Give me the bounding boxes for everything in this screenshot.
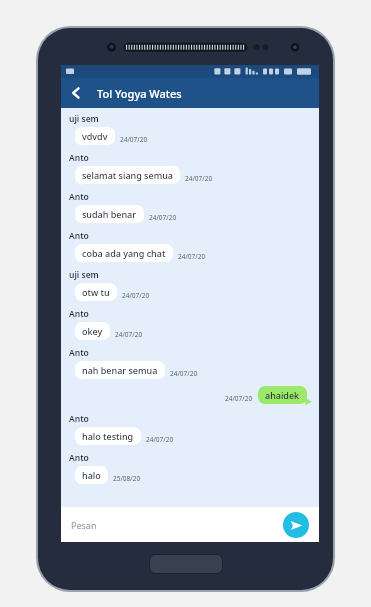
staticText: selamat siang semua bbox=[82, 169, 173, 181]
staticText: uji sem bbox=[69, 113, 99, 125]
staticText: 24/07/20 bbox=[120, 135, 148, 144]
staticText: sudah benar bbox=[82, 208, 137, 220]
staticText: nah benar semua bbox=[82, 364, 158, 376]
button[interactable]: Pesan bbox=[71, 507, 283, 542]
staticText: Pesan bbox=[71, 519, 97, 531]
button[interactable]: uji sem bbox=[69, 113, 311, 152]
staticText: coba ada yang chat bbox=[82, 247, 166, 259]
staticText: 24/07/20 bbox=[149, 213, 177, 222]
staticText: halo bbox=[82, 469, 101, 481]
staticText: 24/07/20 bbox=[170, 369, 198, 378]
button[interactable]: Back bbox=[61, 78, 91, 108]
staticText: 24/07/20 bbox=[185, 174, 213, 183]
button[interactable]: Anto bbox=[69, 347, 311, 386]
staticText: Anto bbox=[69, 230, 89, 242]
staticText: otw tu bbox=[82, 286, 110, 298]
button[interactable]: uji sem bbox=[69, 269, 311, 308]
staticText: Anto bbox=[69, 347, 89, 359]
staticText: Anto bbox=[69, 191, 89, 203]
button[interactable]: Anto bbox=[69, 452, 311, 491]
staticText: okey bbox=[82, 325, 103, 337]
staticText: 24/07/20 bbox=[178, 252, 206, 261]
staticText: Anto bbox=[69, 308, 89, 320]
button[interactable]: Anto bbox=[69, 191, 311, 230]
button[interactable]: 24/07/20 bbox=[69, 386, 311, 404]
button[interactable]: Anto bbox=[69, 152, 311, 191]
staticText: 24/07/20 bbox=[115, 330, 143, 339]
staticText: ahaidek bbox=[265, 389, 300, 401]
staticText: vdvdv bbox=[82, 130, 108, 142]
staticText: Tol Yogya Wates bbox=[97, 86, 182, 101]
button[interactable]: Anto bbox=[69, 413, 311, 452]
staticText: Anto bbox=[69, 413, 89, 425]
staticText: Anto bbox=[69, 152, 89, 164]
staticText: Anto bbox=[69, 452, 89, 464]
staticText: 24/07/20 bbox=[122, 291, 150, 300]
staticText: 25/08/20 bbox=[113, 474, 141, 483]
staticText: 24/07/20 bbox=[225, 394, 253, 403]
button[interactable]: Anto bbox=[69, 308, 311, 347]
staticText: 24/07/20 bbox=[146, 435, 174, 444]
staticText: halo testing bbox=[82, 430, 134, 442]
button[interactable]: Anto bbox=[69, 230, 311, 269]
button[interactable]: Send bbox=[283, 512, 309, 538]
staticText: uji sem bbox=[69, 269, 99, 281]
